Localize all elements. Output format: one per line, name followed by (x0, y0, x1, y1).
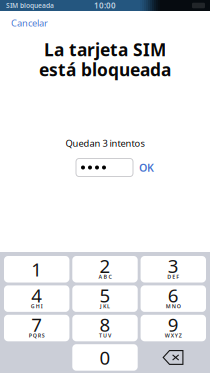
button[interactable]: 3 (141, 256, 206, 282)
button[interactable]: 4 (4, 285, 69, 312)
button[interactable]: Borrar (141, 344, 206, 371)
staticText: PQRS (29, 332, 45, 339)
button[interactable]: 7 (4, 315, 69, 341)
button[interactable]: Cancelar (0, 10, 56, 32)
staticText: 5 (99, 283, 110, 308)
staticText: 7 (31, 312, 42, 337)
staticText: 1 (31, 257, 42, 282)
staticText: 4 (31, 283, 42, 308)
staticText: 2 (99, 253, 110, 278)
staticText: 3 (168, 253, 179, 278)
staticText: Quedan 3 intentos (65, 137, 144, 149)
staticText: JKL (100, 303, 110, 310)
button[interactable]: 5 (72, 285, 138, 312)
button[interactable]: 8 (72, 315, 138, 341)
staticText: OK (139, 160, 154, 175)
button[interactable]: 0 (72, 344, 138, 371)
staticText: 10:00 (94, 0, 116, 11)
staticText: 8 (99, 312, 110, 337)
staticText: DEF (167, 273, 179, 280)
staticText: 9 (168, 312, 179, 337)
staticText: MNO (166, 303, 181, 310)
staticText: WXYZ (165, 332, 182, 339)
staticText: SIM bloqueada (6, 1, 54, 10)
button[interactable]: OK (133, 156, 160, 179)
staticText: TUV (99, 332, 111, 339)
staticText: está bloqueada (39, 58, 171, 81)
staticText: La tarjeta SIM (44, 38, 166, 61)
button[interactable]: 9 (141, 315, 206, 341)
button[interactable]: 1 (4, 256, 69, 282)
button[interactable]: 2 (72, 256, 138, 282)
staticText: ABC (98, 273, 111, 280)
button[interactable]: 6 (141, 285, 206, 312)
staticText: 6 (168, 283, 179, 308)
staticText: 0 (99, 345, 110, 370)
staticText: Cancelar (11, 17, 48, 29)
staticText: GHI (31, 303, 43, 310)
